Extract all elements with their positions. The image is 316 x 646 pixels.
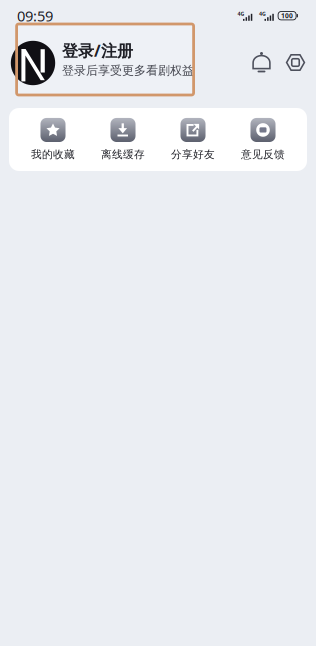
staticText: 分享好友 (171, 148, 215, 161)
button[interactable]: 分享好友 (158, 114, 228, 164)
button[interactable]: 离线缓存 (88, 114, 158, 164)
staticText: 登录后享受更多看剧权益 (62, 63, 194, 78)
staticText: 09:59 (17, 6, 53, 25)
staticText: 登录/注册 (62, 40, 133, 61)
button[interactable]: 登录/注册 (62, 40, 194, 80)
button[interactable]: 意见反馈 (228, 114, 298, 164)
staticText: 我的收藏 (31, 148, 75, 161)
button[interactable]: Settings (286, 52, 305, 73)
staticText: 4G (237, 10, 244, 17)
staticText: 100 (281, 11, 293, 20)
button[interactable]: 我的收藏 (18, 114, 88, 164)
staticText: 4G (259, 10, 266, 17)
staticText: 离线缓存 (101, 148, 145, 161)
button[interactable]: Notifications (252, 52, 271, 73)
staticText: 意见反馈 (241, 148, 285, 161)
